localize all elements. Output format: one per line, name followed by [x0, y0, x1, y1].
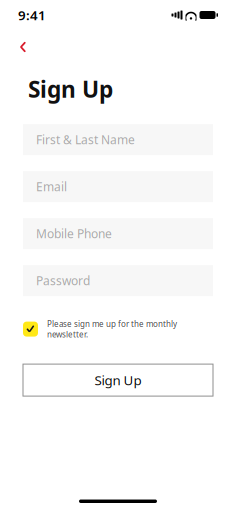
button[interactable]: Please sign me up for the monthly newsle… [23, 318, 213, 340]
button[interactable]: Password [23, 265, 213, 296]
button[interactable]: First & Last Name [23, 124, 213, 155]
staticText: First & Last Name [36, 132, 135, 147]
staticText: Mobile Phone [36, 226, 112, 241]
button[interactable]: Sign Up [23, 364, 213, 396]
button[interactable]: Email [23, 171, 213, 202]
staticText: Email [36, 179, 67, 194]
staticText: 9:41 [18, 6, 46, 24]
button[interactable]: Mobile Phone [23, 218, 213, 249]
button[interactable]: Back [10, 34, 36, 60]
staticText: Sign Up [94, 371, 141, 389]
staticText: Password [36, 273, 90, 288]
staticText: Sign Up [28, 74, 113, 104]
staticText: Please sign me up for the monthly newsle… [47, 318, 177, 340]
